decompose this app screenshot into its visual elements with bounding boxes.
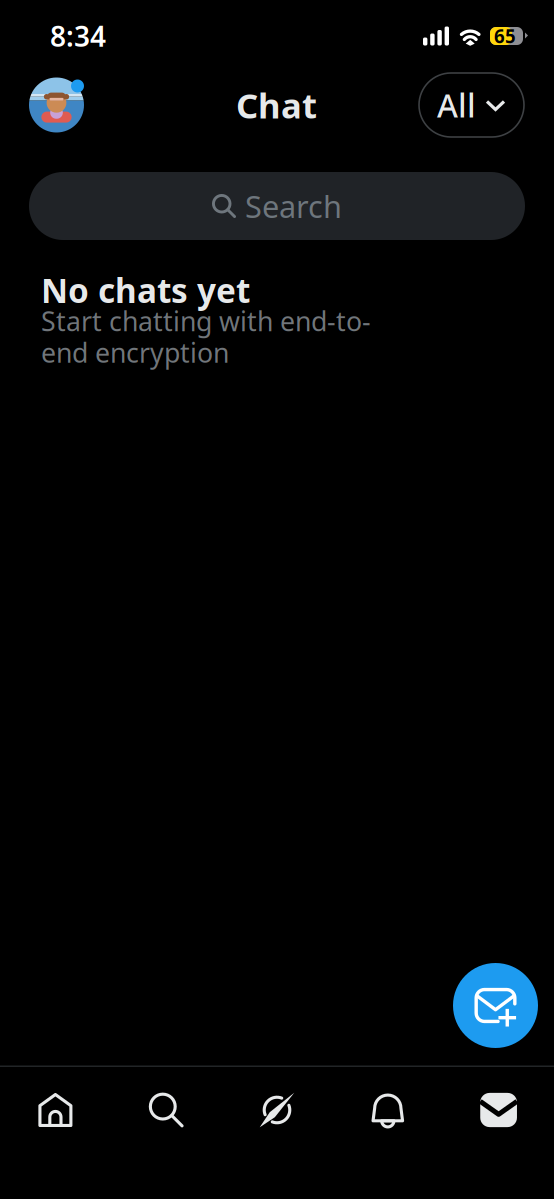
staticText: end encryption xyxy=(41,335,229,370)
button[interactable]: New message xyxy=(453,963,538,1048)
staticText: Chat xyxy=(236,82,317,128)
button[interactable]: Search xyxy=(111,1067,222,1153)
staticText: 8:34 xyxy=(50,17,106,55)
staticText: 65 xyxy=(494,24,516,48)
button[interactable]: Profile xyxy=(29,77,84,132)
button[interactable]: Messages xyxy=(443,1067,554,1153)
button[interactable]: Search xyxy=(29,172,525,240)
staticText: Start chatting with end-to- xyxy=(41,303,371,339)
staticText: No chats yet xyxy=(41,268,250,312)
button[interactable]: All xyxy=(419,73,524,137)
staticText: All xyxy=(437,84,476,126)
staticText: Search xyxy=(245,186,342,226)
button[interactable]: Home xyxy=(0,1067,111,1153)
button[interactable]: Grok xyxy=(222,1067,332,1153)
button[interactable]: Notifications xyxy=(332,1067,443,1153)
